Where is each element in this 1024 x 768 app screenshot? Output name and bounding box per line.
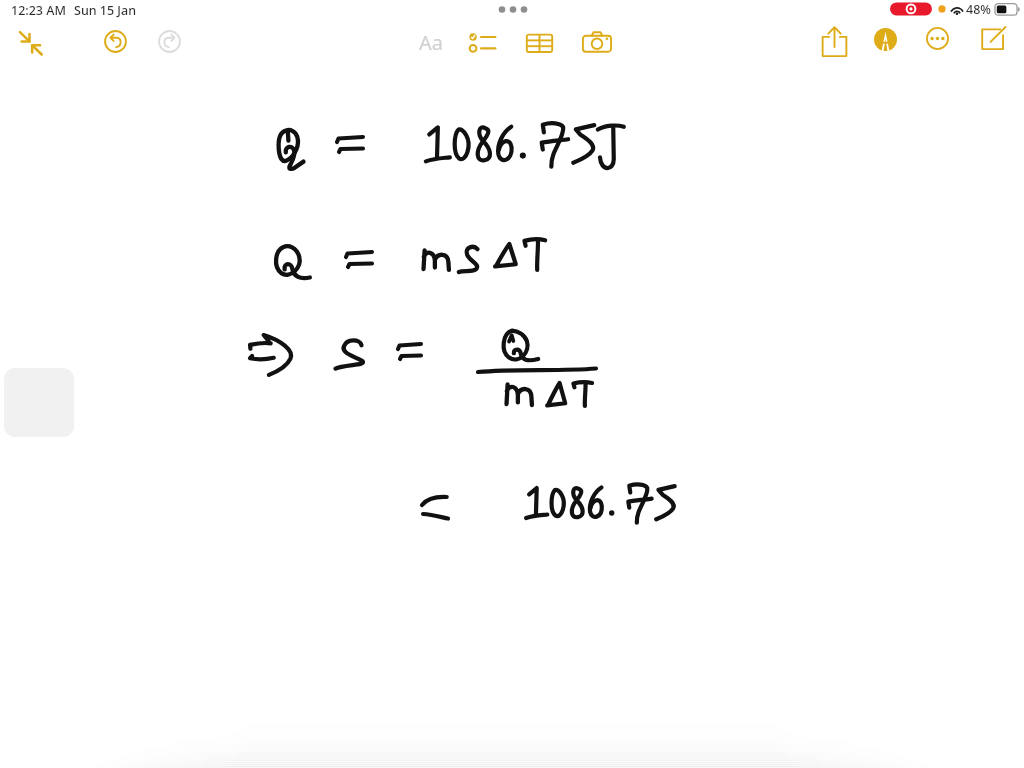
staticText: Aa [419, 29, 443, 56]
button[interactable]: Aa [412, 27, 450, 58]
button[interactable]: Camera [581, 27, 613, 58]
staticText: 12:23 AM [11, 2, 66, 19]
button[interactable]: Table [524, 28, 555, 58]
button[interactable]: Compose [981, 27, 1005, 51]
button[interactable]: Undo [101, 27, 130, 56]
staticText: Sun 15 Jan [74, 2, 136, 19]
button[interactable]: Note canvas [0, 0, 1024, 768]
button[interactable]: Redo [155, 27, 184, 56]
button[interactable]: Collapse [14, 27, 47, 59]
button[interactable]: Checklist [466, 28, 498, 58]
staticText: 48% [966, 1, 991, 18]
button[interactable]: Markup [874, 28, 897, 51]
button[interactable]: More options [926, 27, 949, 50]
button[interactable]: Share [821, 26, 848, 58]
